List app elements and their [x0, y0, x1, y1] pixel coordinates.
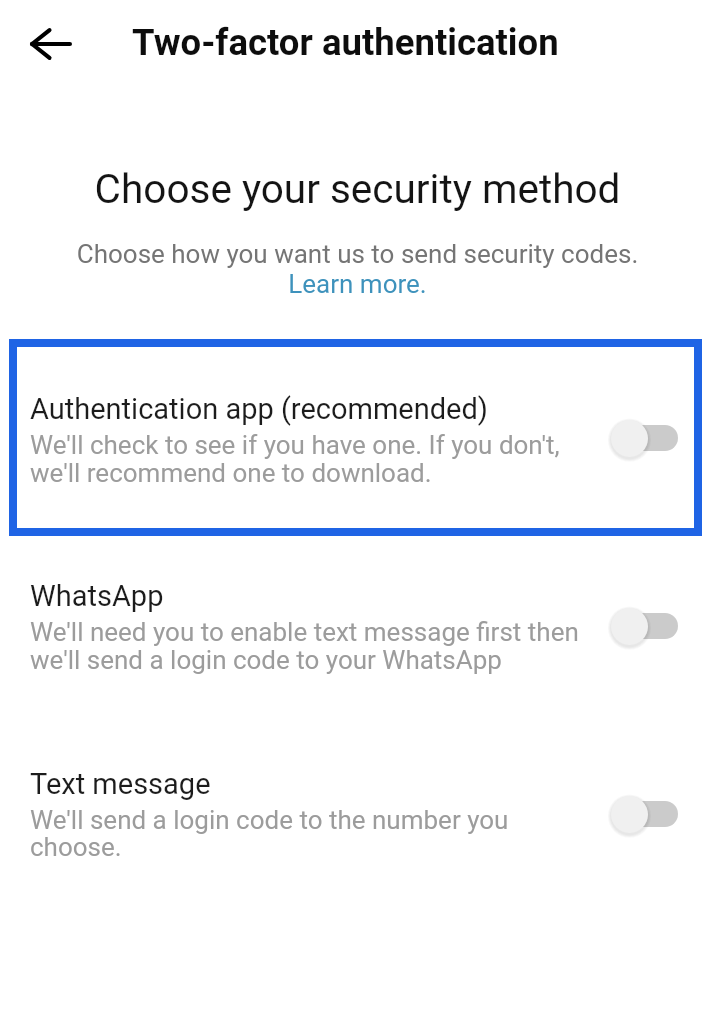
- button[interactable]: Text message: [9, 754, 702, 876]
- staticText: Choose how you want us to send security …: [0, 239, 715, 269]
- button[interactable]: WhatsApp switch: [603, 598, 686, 654]
- staticText: we'll recommend one to download.: [30, 458, 432, 488]
- button[interactable]: Authentication app (recommended): [9, 339, 702, 536]
- staticText: Text message: [30, 767, 211, 801]
- staticText: choose.: [30, 832, 122, 862]
- staticText: We'll check to see if you have one. If y…: [30, 430, 560, 460]
- staticText: Learn more.: [0, 269, 715, 299]
- staticText: WhatsApp: [30, 579, 164, 613]
- button[interactable]: WhatsApp: [9, 566, 702, 688]
- staticText: Choose your security method: [0, 165, 715, 212]
- button[interactable]: Two-factor authentication: [120, 12, 570, 74]
- staticText: we'll send a login code to your WhatsApp: [30, 645, 502, 675]
- button[interactable]: Text message switch: [603, 786, 686, 842]
- staticText: We'll need you to enable text message fi…: [30, 617, 579, 647]
- button[interactable]: Back: [16, 17, 86, 71]
- staticText: Two-factor authentication: [132, 21, 559, 64]
- button[interactable]: Learn more: [284, 268, 434, 298]
- button[interactable]: Authentication app switch: [603, 410, 686, 466]
- staticText: Authentication app (recommended): [30, 392, 488, 426]
- staticText: We'll send a login code to the number yo…: [30, 805, 509, 835]
